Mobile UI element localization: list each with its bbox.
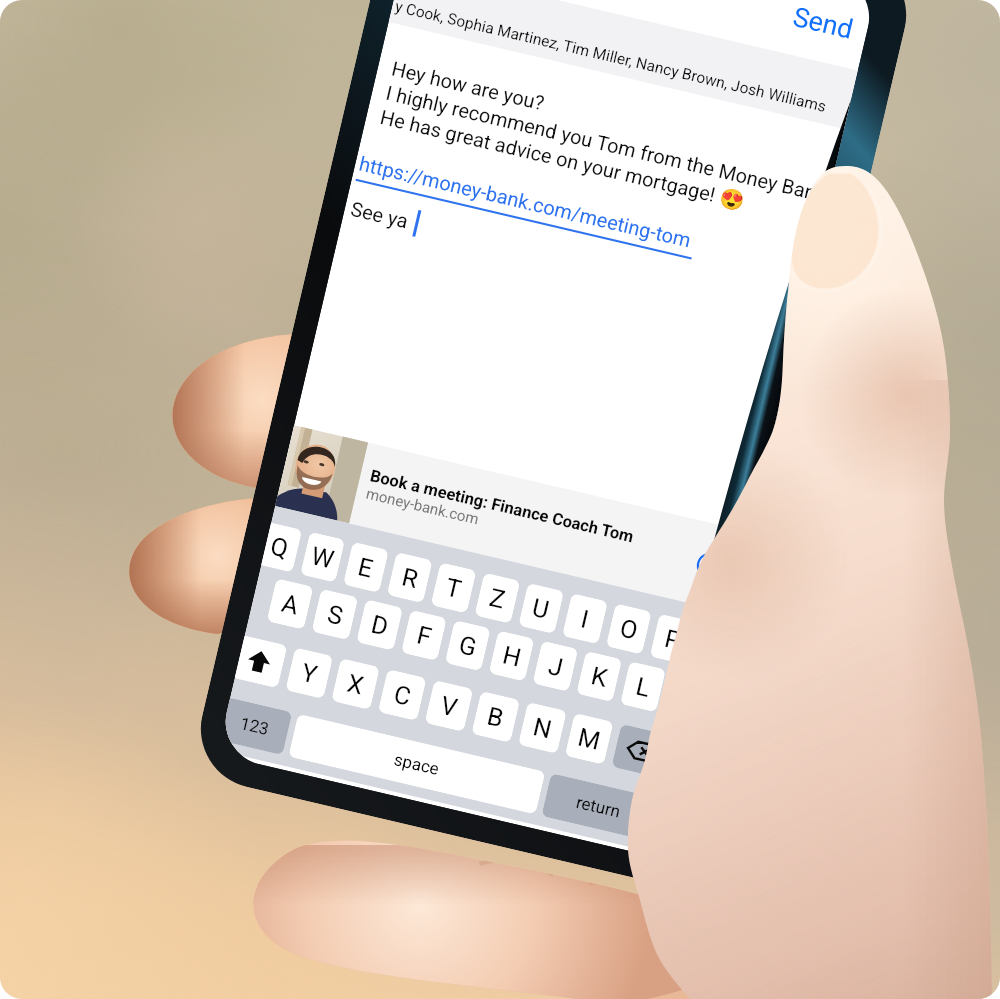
staticText: Hey how are you? [390,56,547,114]
staticText: Y [298,658,321,690]
staticText: X [344,669,366,700]
staticText: E [355,552,376,584]
staticText: B [484,701,507,733]
staticText: J [546,651,566,682]
staticText: O [617,613,641,646]
button[interactable]: space [288,714,545,814]
staticText: Z [487,583,508,614]
staticText: H [500,640,524,673]
staticText: D [368,609,392,642]
staticText: S [325,599,346,631]
staticText: I highly recommend you Tom from the Mone… [384,81,831,207]
staticText: M [575,723,603,756]
button[interactable]: Q [261,522,302,573]
staticText: P [662,624,684,656]
staticText: money-bank.com [364,485,481,529]
button[interactable]: L [620,661,666,712]
button[interactable]: X [331,658,380,710]
button[interactable]: Remove link preview [694,550,725,581]
staticText: I [578,604,592,634]
button[interactable]: W [300,532,345,583]
button[interactable]: H [488,630,535,682]
staticText: Q [268,531,292,564]
button[interactable]: Backspace [611,724,669,778]
staticText: space [392,749,442,779]
staticText: See ya [348,197,411,233]
button[interactable]: F [401,610,447,661]
button[interactable]: S [311,589,358,640]
button[interactable]: U [518,583,564,634]
button[interactable]: Book a meeting: Finance Coach Tom [275,425,750,613]
staticText: G [456,630,480,662]
staticText: He has great advice on your mortgage! 😍 [378,105,748,213]
button[interactable]: I [562,593,608,644]
button[interactable]: O [606,603,652,655]
staticText: V [438,690,460,722]
button[interactable]: V [424,680,473,732]
button[interactable]: A [266,578,313,630]
button[interactable]: Send [790,1,857,46]
button[interactable]: return [541,773,654,840]
staticText: Book a meeting: Finance Coach Tom [368,466,636,546]
staticText: K [588,661,611,693]
button[interactable]: G [445,620,491,671]
button[interactable]: 123 [220,698,292,755]
staticText: N [530,712,554,744]
staticText: F [414,620,434,652]
button[interactable]: J [532,641,578,692]
button[interactable]: K [576,651,622,702]
staticText: return [574,792,623,822]
button[interactable]: N [518,702,567,754]
staticText: T [443,572,464,604]
button[interactable]: https://money-bank.com/meeting-tom [357,151,693,251]
button[interactable]: Y [285,647,333,699]
staticText: A [279,588,302,621]
staticText: C [391,679,414,712]
button[interactable]: R [387,552,433,603]
button[interactable]: P [650,614,696,665]
staticText: L [633,672,653,703]
button[interactable]: T [430,562,477,613]
button[interactable]: M [565,713,614,765]
staticText: U [529,593,553,625]
staticText: y Cook, Sophia Martinez, Tim Miller, Nan… [393,0,828,116]
staticText: 123 [238,713,271,739]
button[interactable]: B [471,691,520,743]
staticText: R [399,562,421,594]
button[interactable]: Z [474,572,520,624]
button[interactable]: Shift [235,635,287,688]
button[interactable]: C [378,669,427,721]
staticText: W [308,541,337,574]
button[interactable]: E [343,542,389,593]
button[interactable]: D [356,599,403,651]
